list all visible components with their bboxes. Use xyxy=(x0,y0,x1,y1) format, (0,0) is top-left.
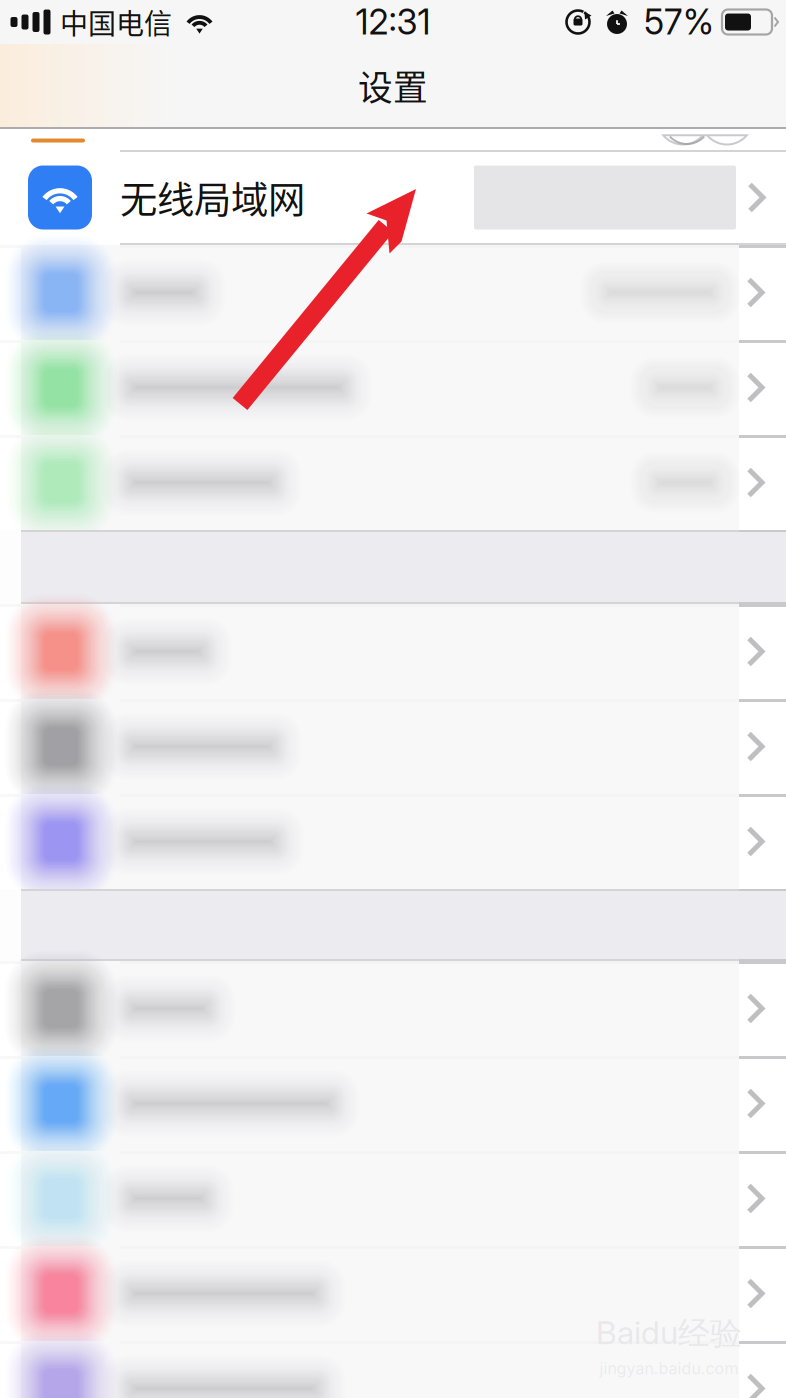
staticText: jingyan.baidu.com xyxy=(599,1359,738,1378)
button[interactable] xyxy=(0,340,786,435)
button[interactable] xyxy=(0,1056,786,1151)
staticText: 中国电信 xyxy=(60,2,172,42)
button[interactable] xyxy=(0,1341,786,1398)
button[interactable]: 无线局域网 xyxy=(0,150,786,245)
button[interactable] xyxy=(0,794,786,889)
button[interactable] xyxy=(0,435,786,530)
staticText: 设置 xyxy=(358,60,428,111)
button[interactable] xyxy=(0,245,786,340)
button[interactable] xyxy=(0,961,786,1056)
button[interactable] xyxy=(0,1151,786,1246)
staticText: 57% xyxy=(644,1,714,43)
button[interactable] xyxy=(0,1246,786,1341)
staticText: 无线局域网 xyxy=(120,170,305,225)
staticText: 12:31 xyxy=(355,1,430,43)
button[interactable] xyxy=(0,604,786,699)
staticText: Baidu经验 xyxy=(596,1313,742,1354)
button[interactable] xyxy=(0,699,786,794)
